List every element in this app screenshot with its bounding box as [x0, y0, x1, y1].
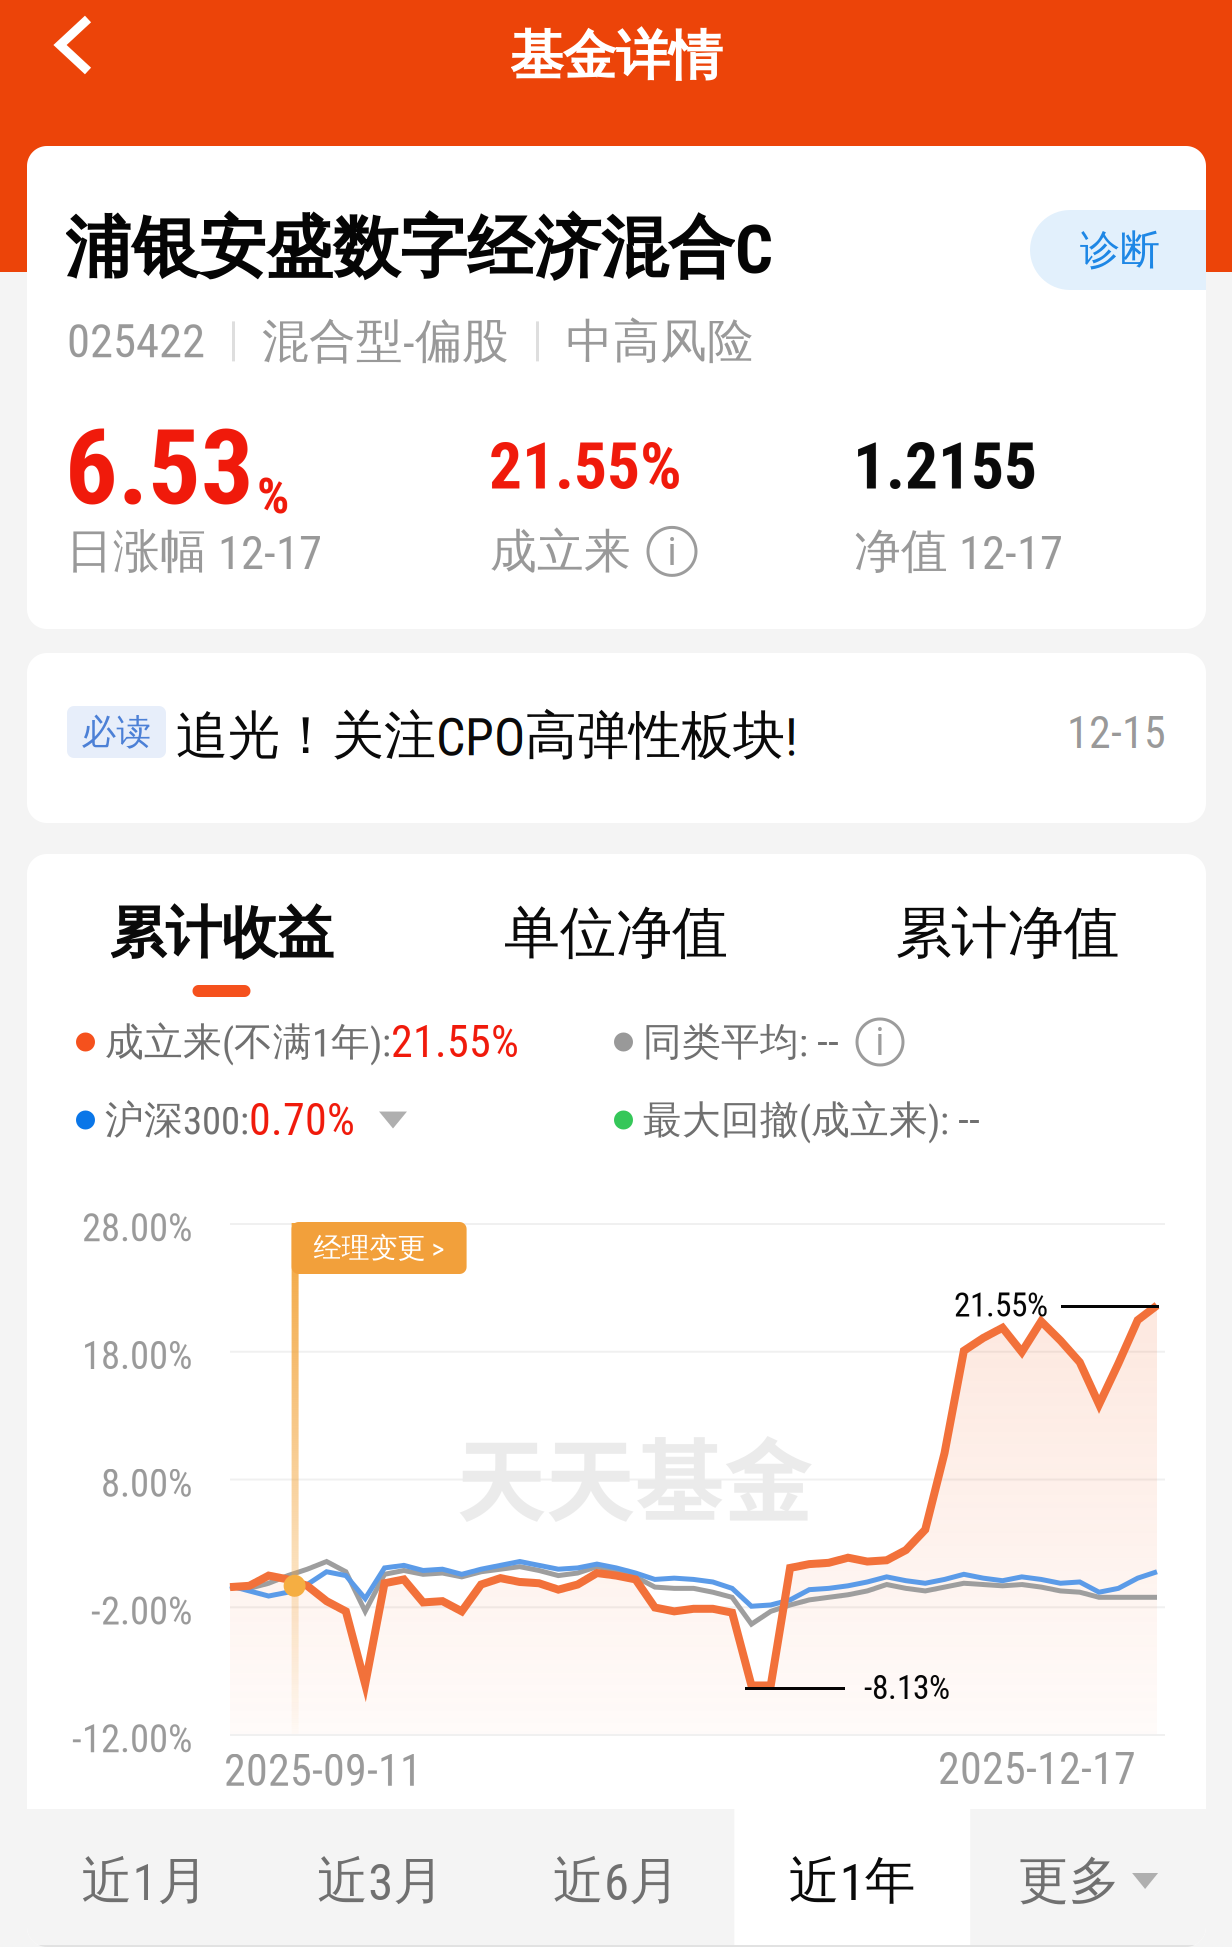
staticText: 21.55% [954, 1285, 1048, 1325]
staticText: % [257, 466, 289, 526]
staticText: 0.70% [249, 1094, 355, 1146]
staticText: i [875, 1020, 884, 1064]
staticText: 成立来(不满1年): [105, 1018, 391, 1066]
staticText: 28.00% [82, 1205, 192, 1251]
staticText: 21.55% [489, 428, 682, 505]
staticText: 成立来 [490, 522, 631, 581]
button[interactable]: 必读 [27, 653, 1206, 823]
staticText: -- [817, 1016, 839, 1068]
staticText: 2025-12-17 [938, 1743, 1136, 1795]
staticText: 8.00% [101, 1461, 192, 1506]
staticText: 诊断 [1080, 225, 1160, 275]
staticText: 天天基金 [457, 1410, 813, 1539]
staticText: 追光！关注CPO高弹性板块! [176, 703, 798, 768]
button[interactable]: 近1月 [27, 1809, 263, 1947]
button[interactable]: 累计收益 [41, 895, 401, 995]
button[interactable]: 经理变更 > [292, 1222, 467, 1274]
staticText: 累计收益 [109, 898, 333, 968]
staticText: 更多 [1018, 1849, 1120, 1913]
staticText: 日涨幅 12-17 [66, 522, 322, 581]
button[interactable]: 返回 [0, 0, 139, 106]
staticText: 基金详情 [510, 22, 722, 90]
staticText: -2.00% [91, 1589, 192, 1634]
staticText: 经理变更 > [314, 1230, 445, 1266]
staticText: 必读 [81, 710, 151, 754]
button[interactable]: 近1年 [734, 1809, 970, 1947]
staticText: 近6月 [553, 1849, 680, 1913]
button[interactable]: 单位净值 [436, 895, 796, 995]
staticText: 单位净值 [504, 898, 728, 968]
staticText: 12-15 [1067, 707, 1166, 759]
staticText: 18.00% [82, 1333, 192, 1378]
button[interactable]: 近6月 [499, 1809, 734, 1947]
staticText: -12.00% [72, 1716, 192, 1762]
staticText: 1.2155 [853, 428, 1037, 505]
staticText: 累计净值 [895, 898, 1119, 968]
staticText: 近3月 [317, 1849, 444, 1913]
staticText: 沪深300: [105, 1096, 249, 1144]
staticText: 21.55% [391, 1016, 519, 1068]
staticText: -8.13% [864, 1668, 950, 1707]
staticText: 最大回撤(成立来): [643, 1096, 958, 1144]
staticText: -- [958, 1094, 980, 1146]
staticText: i [667, 528, 676, 575]
button[interactable]: 近3月 [263, 1809, 499, 1947]
staticText: 025422 [67, 314, 205, 369]
staticText: 6.53 [65, 407, 254, 529]
staticText: 中高风险 [566, 312, 754, 371]
staticText: 2025-09-11 [224, 1745, 422, 1797]
staticText: 混合型-偏股 [262, 312, 509, 371]
button[interactable]: 累计净值 [827, 895, 1187, 995]
button[interactable]: 诊断 [1030, 210, 1232, 290]
staticText: 近1年 [789, 1849, 916, 1913]
staticText: 净值 12-17 [854, 522, 1063, 581]
staticText: 近1月 [81, 1849, 208, 1913]
staticText: 同类平均: [643, 1018, 817, 1066]
staticText: 浦银安盛数字经济混合C [65, 206, 773, 290]
button[interactable]: 更多 [970, 1809, 1206, 1947]
